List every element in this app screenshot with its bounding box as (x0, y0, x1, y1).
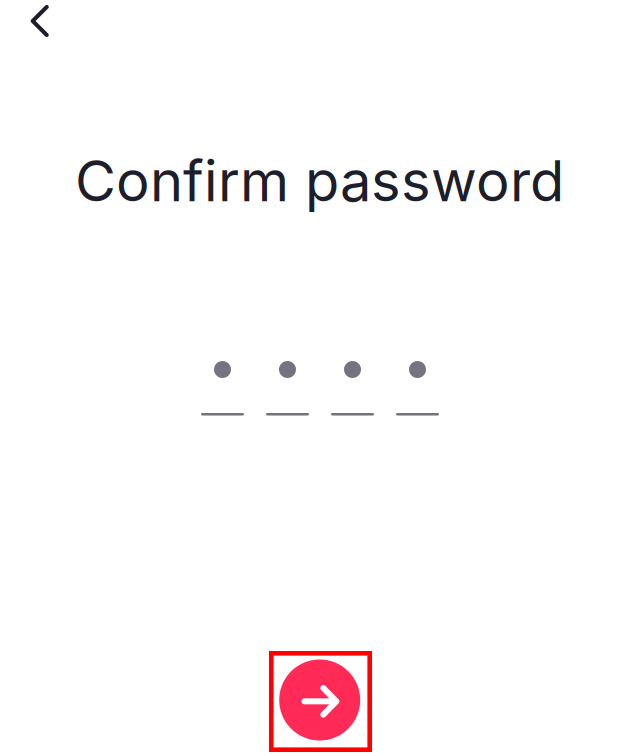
staticText: Confirm password (75, 147, 564, 215)
button[interactable]: Back (12, 0, 68, 48)
button[interactable]: Password (201, 361, 439, 415)
button[interactable]: Continue (269, 651, 372, 752)
